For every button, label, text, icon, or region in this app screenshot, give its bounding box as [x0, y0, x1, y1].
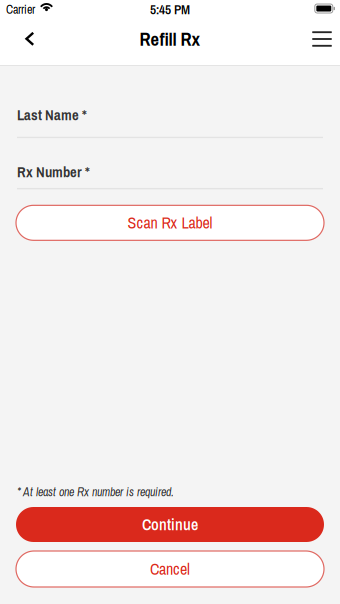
staticText: Refill Rx — [139, 26, 200, 51]
staticText: Scan Rx Label — [127, 212, 212, 234]
staticText: Rx Number * — [17, 162, 90, 182]
button[interactable]: Menu — [305, 22, 339, 56]
button[interactable]: Scan Rx Label — [16, 205, 324, 240]
staticText: Last Name * — [17, 105, 87, 125]
staticText: 5:45 PM — [150, 0, 190, 18]
staticText: Continue — [142, 514, 198, 535]
button[interactable]: Cancel — [16, 551, 324, 587]
staticText: Carrier — [6, 1, 35, 18]
staticText: Cancel — [150, 558, 190, 580]
button[interactable]: Back — [13, 22, 47, 56]
button[interactable]: Continue — [16, 507, 324, 542]
staticText: * At least one Rx number is required. — [17, 484, 174, 500]
